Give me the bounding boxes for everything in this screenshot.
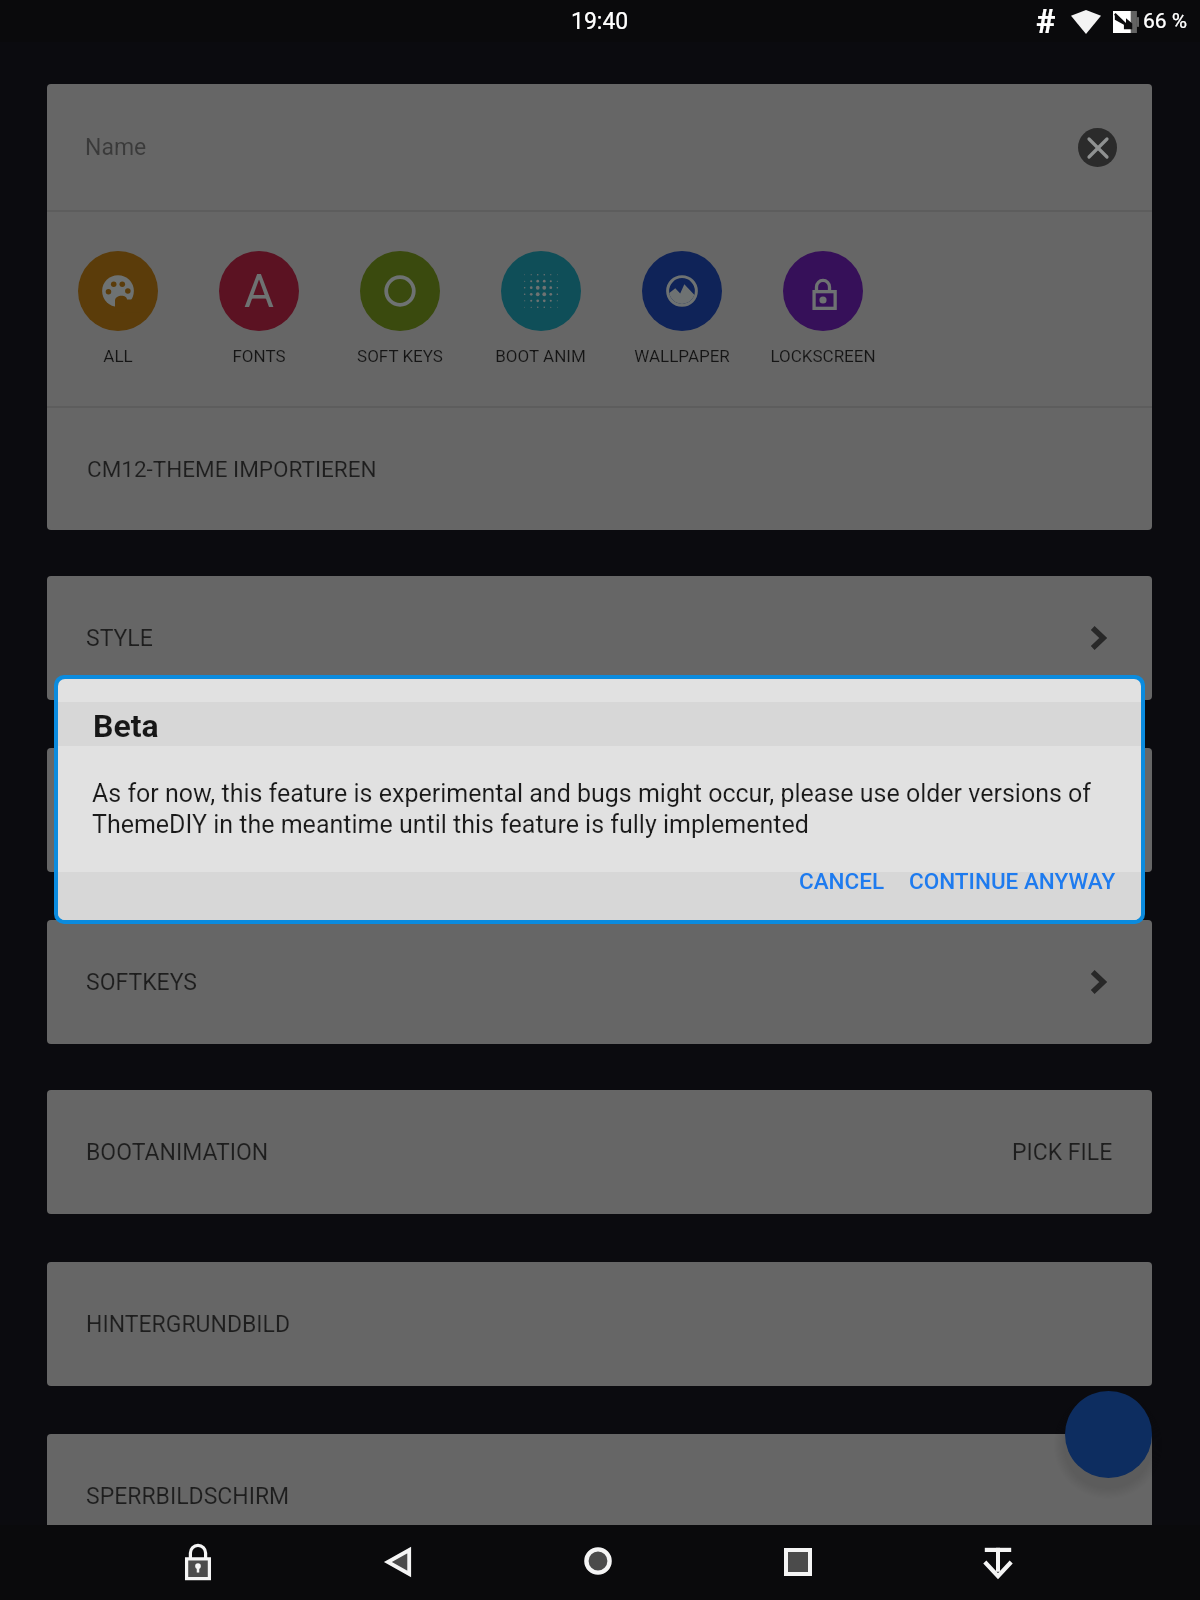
button[interactable]: SOFT KEYS (329, 212, 470, 406)
button[interactable]: ALL (47, 212, 188, 406)
staticText: SPERRBILDSCHIRM (86, 1483, 290, 1510)
staticText: BOOTANIMATION (86, 1139, 269, 1166)
button[interactable]: WALLPAPER (611, 212, 752, 406)
staticText: WALLPAPER (634, 346, 730, 366)
button[interactable]: HINTERGRUNDBILD (47, 1262, 1152, 1386)
button[interactable]: CANCEL (787, 861, 897, 901)
button[interactable]: STYLE (47, 576, 1152, 700)
staticText: FONTS (232, 346, 286, 366)
staticText: SCHRIFTART (86, 797, 220, 824)
button[interactable]: Add theme (1065, 1391, 1152, 1478)
staticText: ALL (103, 346, 133, 366)
staticText: SOFT KEYS (357, 346, 443, 366)
button[interactable]: Lock (166, 1528, 230, 1592)
button[interactable]: CM12-THEME IMPORTIEREN (47, 408, 1152, 530)
staticText: SOFTKEYS (86, 969, 197, 996)
staticText: HINTERGRUNDBILD (86, 1311, 291, 1338)
button[interactable]: CONTINUE ANYWAY (897, 861, 1128, 901)
button[interactable]: SOFTKEYS (47, 920, 1152, 1044)
button[interactable]: Hide keyboard (966, 1530, 1030, 1594)
staticText: 19:40 (571, 8, 629, 35)
button[interactable]: SCHRIFTART (47, 748, 1152, 872)
staticText: # (1036, 2, 1056, 41)
staticText: BOOT ANIM (495, 346, 586, 366)
button[interactable]: LOCKSCREEN (752, 212, 893, 406)
staticText: PICK FILE (1012, 1139, 1113, 1166)
button[interactable]: BOOT ANIM (470, 212, 611, 406)
button[interactable]: A (188, 212, 329, 406)
staticText: CANCEL (799, 868, 885, 894)
button[interactable]: SPERRBILDSCHIRM (47, 1434, 1152, 1558)
staticText: LOCKSCREEN (770, 346, 876, 366)
staticText: A (244, 264, 275, 318)
button[interactable]: Back (366, 1530, 430, 1594)
staticText: CM12-THEME IMPORTIEREN (87, 456, 377, 482)
staticText: 66 % (1143, 9, 1188, 34)
button[interactable]: Recents (766, 1530, 830, 1594)
button[interactable]: Home (566, 1529, 630, 1593)
staticText: CONTINUE ANYWAY (909, 868, 1116, 894)
staticText: Name (85, 134, 147, 161)
staticText: As for now, this feature is experimental… (92, 779, 1141, 839)
staticText: STYLE (86, 625, 153, 652)
button[interactable]: Clear name (1078, 128, 1117, 167)
button[interactable]: BOOTANIMATION (47, 1090, 1152, 1214)
staticText: Beta (93, 707, 159, 745)
